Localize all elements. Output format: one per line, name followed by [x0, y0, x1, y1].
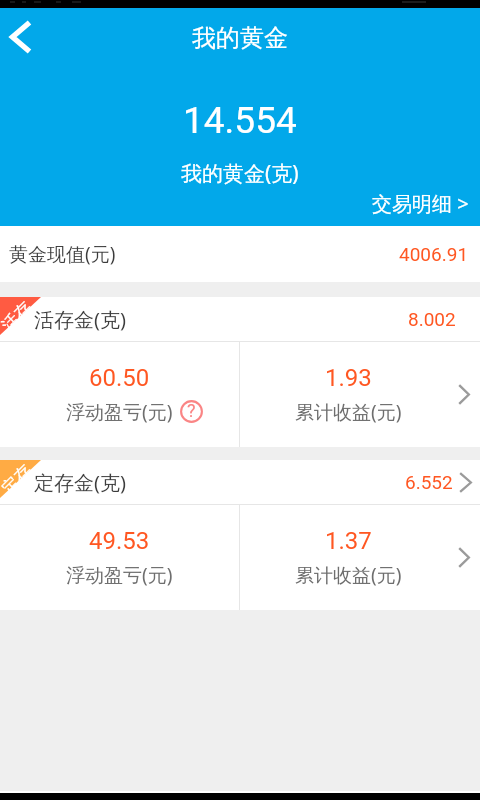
button[interactable]: 60.50 — [0, 342, 239, 447]
staticText: 活存 — [0, 297, 36, 336]
button[interactable]: 1.93 — [240, 342, 480, 447]
staticText: 交易明细 > — [372, 190, 469, 217]
staticText: 4006.91 — [399, 243, 469, 265]
button[interactable]: 49.53 — [0, 505, 239, 610]
staticText: 6.552 — [405, 471, 453, 493]
staticText: 浮动盈亏(元) — [66, 399, 173, 425]
button[interactable]: 活存 — [0, 297, 480, 341]
staticText: 浮动盈亏(元) — [66, 562, 173, 588]
staticText: 14.554 — [183, 99, 297, 142]
staticText: 1.93 — [325, 364, 372, 392]
staticText: 活存金(克) — [34, 306, 126, 333]
staticText: ? — [187, 400, 196, 421]
button[interactable]: 交易明细 > — [372, 190, 469, 217]
staticText: 定存 — [0, 460, 36, 499]
staticText: 定存金(克) — [34, 469, 126, 496]
staticText: 我的黄金 — [192, 23, 288, 53]
button[interactable]: Back — [0, 11, 45, 63]
staticText: 累计收益(元) — [295, 399, 402, 425]
button[interactable]: 1.37 — [240, 505, 480, 610]
staticText: 1.37 — [325, 527, 372, 555]
staticText: 我的黄金(克) — [181, 159, 299, 188]
staticText: 60.50 — [89, 364, 150, 392]
staticText: 8.002 — [408, 308, 456, 330]
staticText: 黄金现值(元) — [9, 241, 116, 267]
button[interactable]: 黄金现值(元) — [0, 226, 480, 282]
staticText: 49.53 — [89, 527, 150, 555]
staticText: 累计收益(元) — [295, 562, 402, 588]
button[interactable]: 定存 — [0, 460, 480, 504]
